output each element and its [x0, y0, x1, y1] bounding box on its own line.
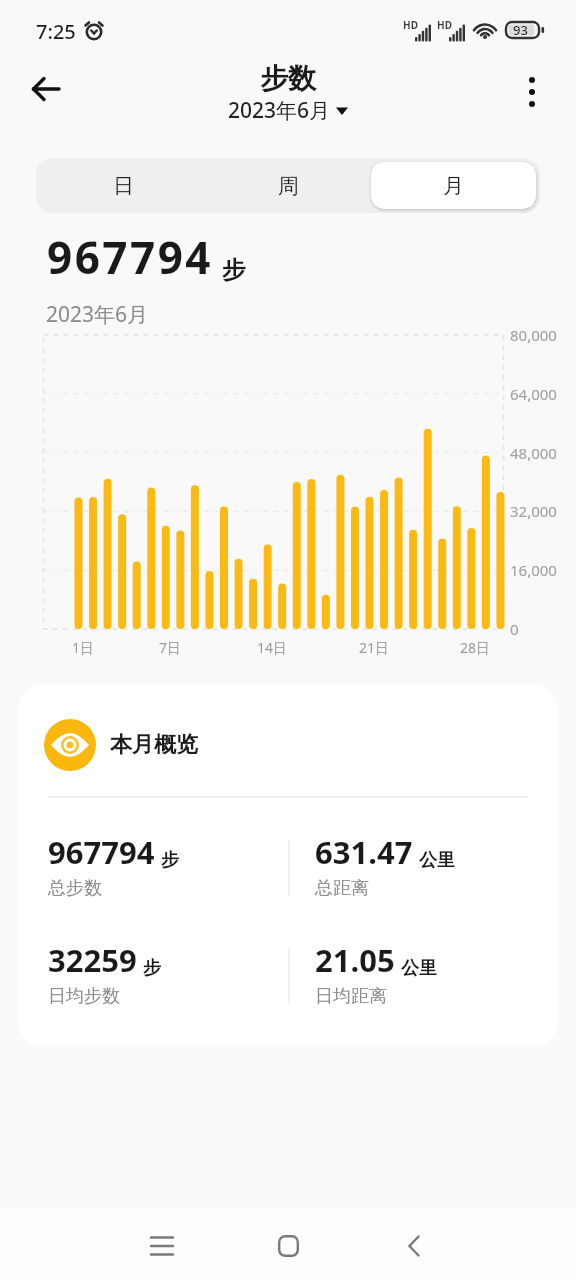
- staticText: 公里: [419, 849, 455, 872]
- staticText: 2023年6月: [228, 96, 331, 125]
- staticText: 631.47: [315, 831, 413, 873]
- staticText: 7:25: [36, 18, 76, 45]
- staticText: 0: [510, 619, 519, 639]
- staticText: 967794: [47, 227, 214, 287]
- staticText: HD: [403, 18, 418, 32]
- staticText: 步: [143, 957, 161, 980]
- button[interactable]: 周: [206, 162, 371, 209]
- button[interactable]: 日: [40, 162, 206, 209]
- staticText: 步: [222, 255, 246, 285]
- staticText: 967794: [48, 831, 155, 873]
- button[interactable]: [25, 67, 69, 111]
- staticText: 93: [513, 21, 528, 39]
- button[interactable]: 2023年6月: [228, 96, 348, 125]
- staticText: 16,000: [510, 560, 557, 580]
- staticText: 48,000: [510, 443, 557, 463]
- staticText: 64,000: [510, 384, 557, 404]
- staticText: 日: [113, 173, 134, 199]
- staticText: 日均距离: [315, 985, 387, 1008]
- staticText: HD: [437, 18, 452, 32]
- staticText: 32259: [48, 939, 137, 981]
- staticText: 32,000: [510, 501, 557, 521]
- staticText: 月: [443, 173, 464, 199]
- staticText: 7日: [159, 638, 182, 657]
- staticText: 2023年6月: [46, 300, 149, 329]
- staticText: 步数: [260, 61, 316, 96]
- staticText: 本月概览: [110, 731, 198, 759]
- button[interactable]: [510, 70, 554, 114]
- button[interactable]: 月: [371, 162, 536, 209]
- button[interactable]: [140, 1224, 184, 1268]
- staticText: 1日: [72, 638, 95, 657]
- staticText: 总距离: [315, 877, 369, 900]
- staticText: 公里: [401, 957, 437, 980]
- staticText: 步: [161, 849, 179, 872]
- staticText: 21日: [359, 638, 390, 657]
- staticText: 14日: [257, 638, 288, 657]
- staticText: 21.05: [315, 939, 395, 981]
- staticText: 周: [278, 173, 299, 199]
- staticText: 总步数: [48, 877, 102, 900]
- staticText: 80,000: [510, 325, 557, 345]
- staticText: 28日: [460, 638, 491, 657]
- staticText: 日均步数: [48, 985, 120, 1008]
- button[interactable]: [392, 1224, 436, 1268]
- button[interactable]: [266, 1224, 310, 1268]
